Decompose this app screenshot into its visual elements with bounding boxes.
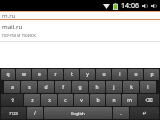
- button[interactable]: e: [32, 69, 47, 80]
- staticText: почта и поиск: [2, 32, 36, 39]
- staticText: e: [38, 71, 41, 78]
- staticText: w: [22, 71, 26, 78]
- staticText: r: [54, 71, 57, 78]
- button[interactable]: t: [64, 69, 79, 80]
- button[interactable]: ?123: [1, 107, 26, 119]
- button[interactable]: g: [72, 81, 88, 93]
- button[interactable]: x: [41, 94, 57, 106]
- staticText: m.ru: [2, 12, 16, 19]
- staticText: v: [80, 97, 83, 104]
- staticText: h: [95, 84, 99, 91]
- staticText: g: [78, 84, 82, 91]
- staticText: u: [102, 71, 106, 78]
- staticText: i: [119, 71, 121, 78]
- button[interactable]: f: [55, 81, 71, 93]
- staticText: o: [134, 71, 138, 78]
- staticText: t: [71, 71, 73, 78]
- staticText: /: [34, 110, 36, 117]
- staticText: ↵: [142, 110, 147, 116]
- staticText: 14:06: [121, 1, 139, 11]
- button[interactable]: ⌫: [138, 94, 159, 106]
- staticText: .: [120, 110, 122, 117]
- staticText: x: [48, 97, 51, 104]
- button[interactable]: n: [106, 94, 121, 106]
- staticText: English: [71, 111, 85, 116]
- staticText: ?123: [9, 111, 18, 116]
- button[interactable]: q: [1, 69, 15, 80]
- staticText: mail.ru: [2, 23, 23, 31]
- staticText: b: [96, 97, 100, 104]
- button[interactable]: ⇧: [1, 94, 23, 106]
- button[interactable]: s: [21, 81, 37, 93]
- staticText: f: [62, 84, 64, 91]
- staticText: d: [44, 84, 48, 91]
- button[interactable]: i: [112, 69, 127, 80]
- button[interactable]: y: [80, 69, 95, 80]
- staticText: s: [28, 84, 31, 91]
- button[interactable]: c: [58, 94, 73, 106]
- button[interactable]: o: [128, 69, 143, 80]
- staticText: k: [130, 84, 133, 91]
- staticText: ⌫: [145, 97, 153, 103]
- staticText: a: [11, 84, 14, 91]
- button[interactable]: h: [89, 81, 105, 93]
- button[interactable]: p: [144, 69, 159, 80]
- button[interactable]: a: [4, 81, 20, 93]
- button[interactable]: d: [38, 81, 54, 93]
- button[interactable]: mail.ru: [0, 22, 160, 40]
- staticText: ⇧: [10, 97, 15, 103]
- staticText: q: [6, 71, 10, 78]
- button[interactable]: j: [106, 81, 122, 93]
- staticText: c: [64, 97, 67, 104]
- button[interactable]: r: [48, 69, 63, 80]
- button[interactable]: m: [122, 94, 137, 106]
- button[interactable]: ↵: [130, 107, 159, 119]
- button[interactable]: u: [96, 69, 111, 80]
- staticText: m: [127, 97, 132, 104]
- button[interactable]: l: [140, 81, 156, 93]
- button[interactable]: m.ru: [0, 11, 160, 20]
- button[interactable]: .: [113, 107, 129, 119]
- staticText: j: [113, 84, 115, 91]
- button[interactable]: /: [27, 107, 43, 119]
- button[interactable]: v: [74, 94, 89, 106]
- staticText: z: [31, 97, 34, 104]
- staticText: l: [147, 84, 149, 91]
- button[interactable]: w: [16, 69, 31, 80]
- staticText: n: [112, 97, 116, 104]
- button[interactable]: English: [44, 107, 112, 119]
- button[interactable]: z: [24, 94, 40, 106]
- button[interactable]: b: [90, 94, 105, 106]
- staticText: y: [86, 71, 89, 78]
- button[interactable]: k: [123, 81, 139, 93]
- staticText: p: [150, 71, 154, 78]
